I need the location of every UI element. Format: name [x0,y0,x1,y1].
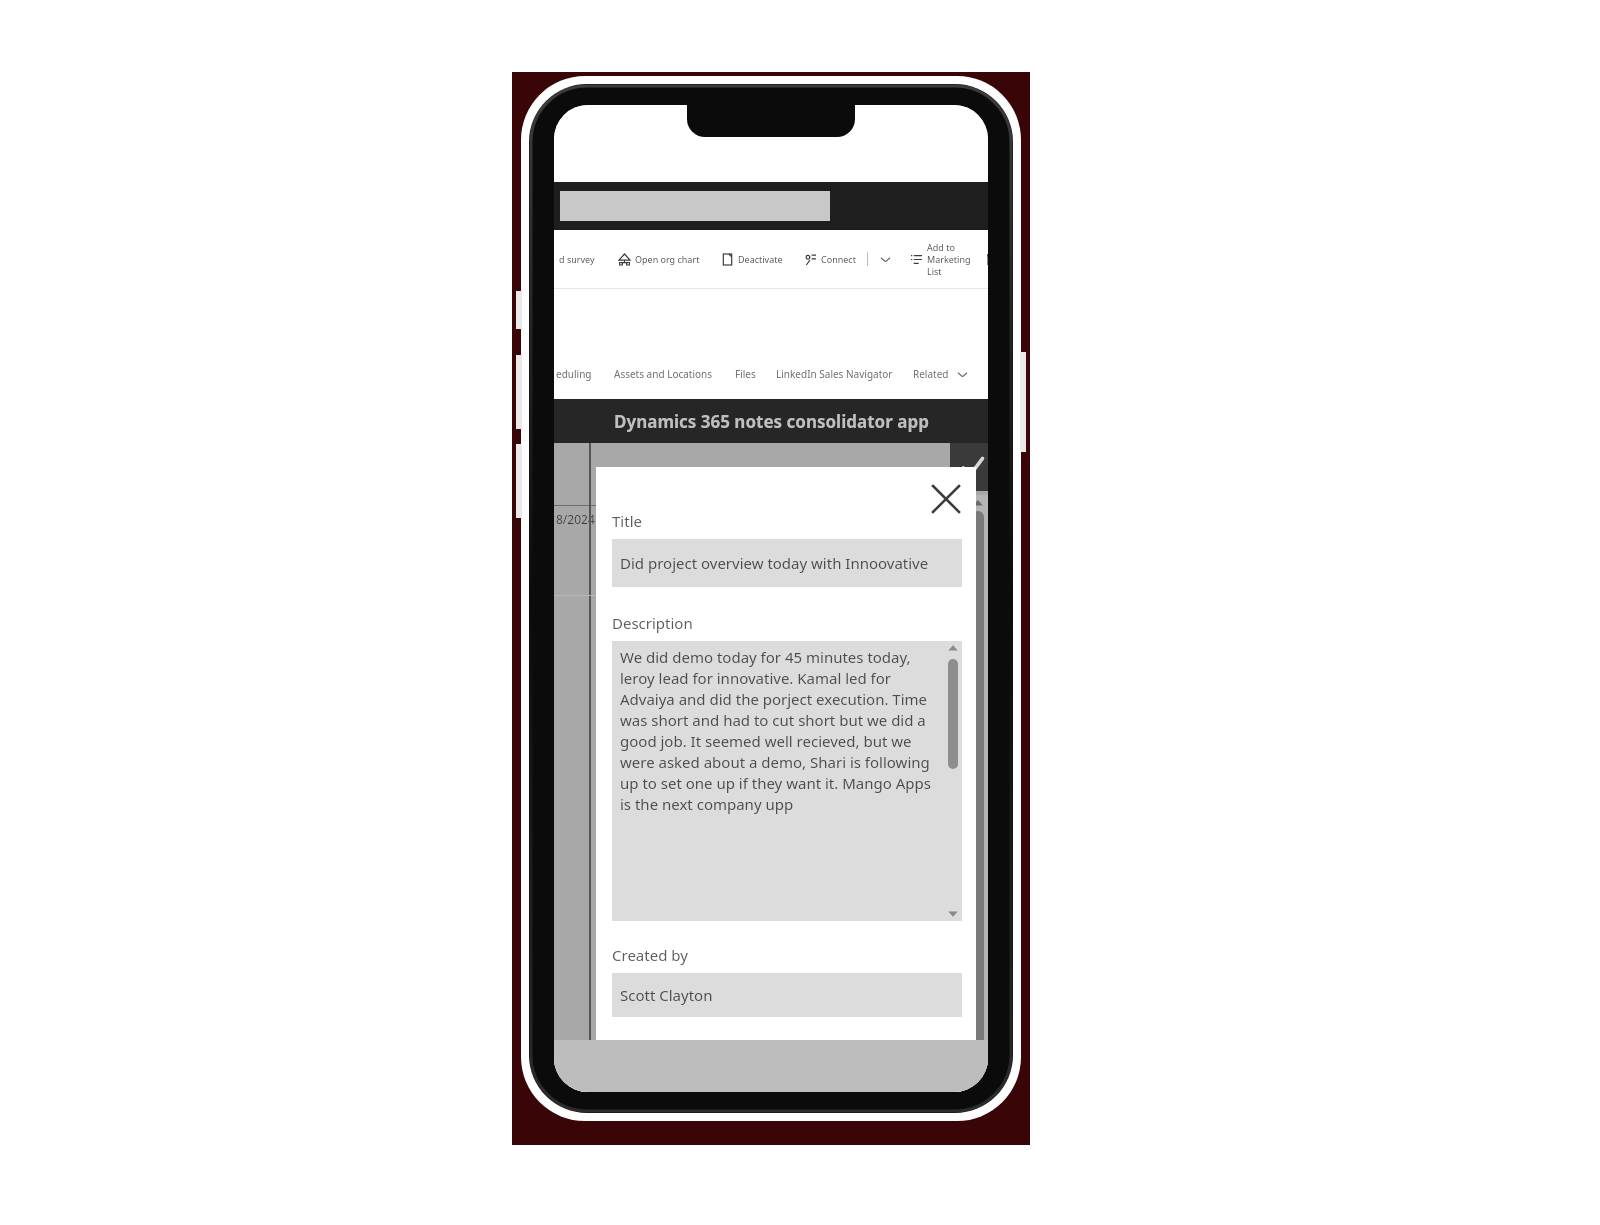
button[interactable]: OrgChart [616,251,632,267]
button[interactable]: Connect [821,253,856,265]
staticText: Dynamics 365 notes consolidator app [614,410,929,433]
button[interactable]: Scott Clayton [612,973,962,1017]
staticText: Scott Clayton [620,985,713,1005]
button[interactable]: Did project overview today with Innoovat… [612,539,962,587]
staticText: Title [612,511,642,531]
staticText: 8/2024 [556,511,595,527]
button[interactable]: Doc [719,251,735,267]
staticText: We did demo today for 45 minutes today, … [620,647,936,815]
button[interactable]: Files [735,367,756,381]
staticText: Description [612,613,693,633]
button[interactable]: eduling [556,367,592,381]
button[interactable]: Related [913,367,949,381]
button[interactable]: More [878,252,892,266]
button[interactable]: Open org chart [635,253,700,265]
button[interactable]: Assets and Locations [614,367,713,381]
button[interactable]: AddList [908,251,924,267]
button[interactable]: More [955,367,969,381]
staticText: Did project overview today with Innoovat… [620,553,929,573]
button[interactable]: Close [924,477,968,521]
staticText: Created by [612,945,688,965]
button[interactable]: LinkedIn Sales Navigator [776,367,893,381]
button[interactable]: Connect [802,251,818,267]
button[interactable]: Add to Marketing List [927,241,985,277]
button[interactable]: d survey [559,253,595,265]
button[interactable]: We did demo today for 45 minutes today, … [612,641,962,921]
button[interactable]: Deactivate [738,253,783,265]
